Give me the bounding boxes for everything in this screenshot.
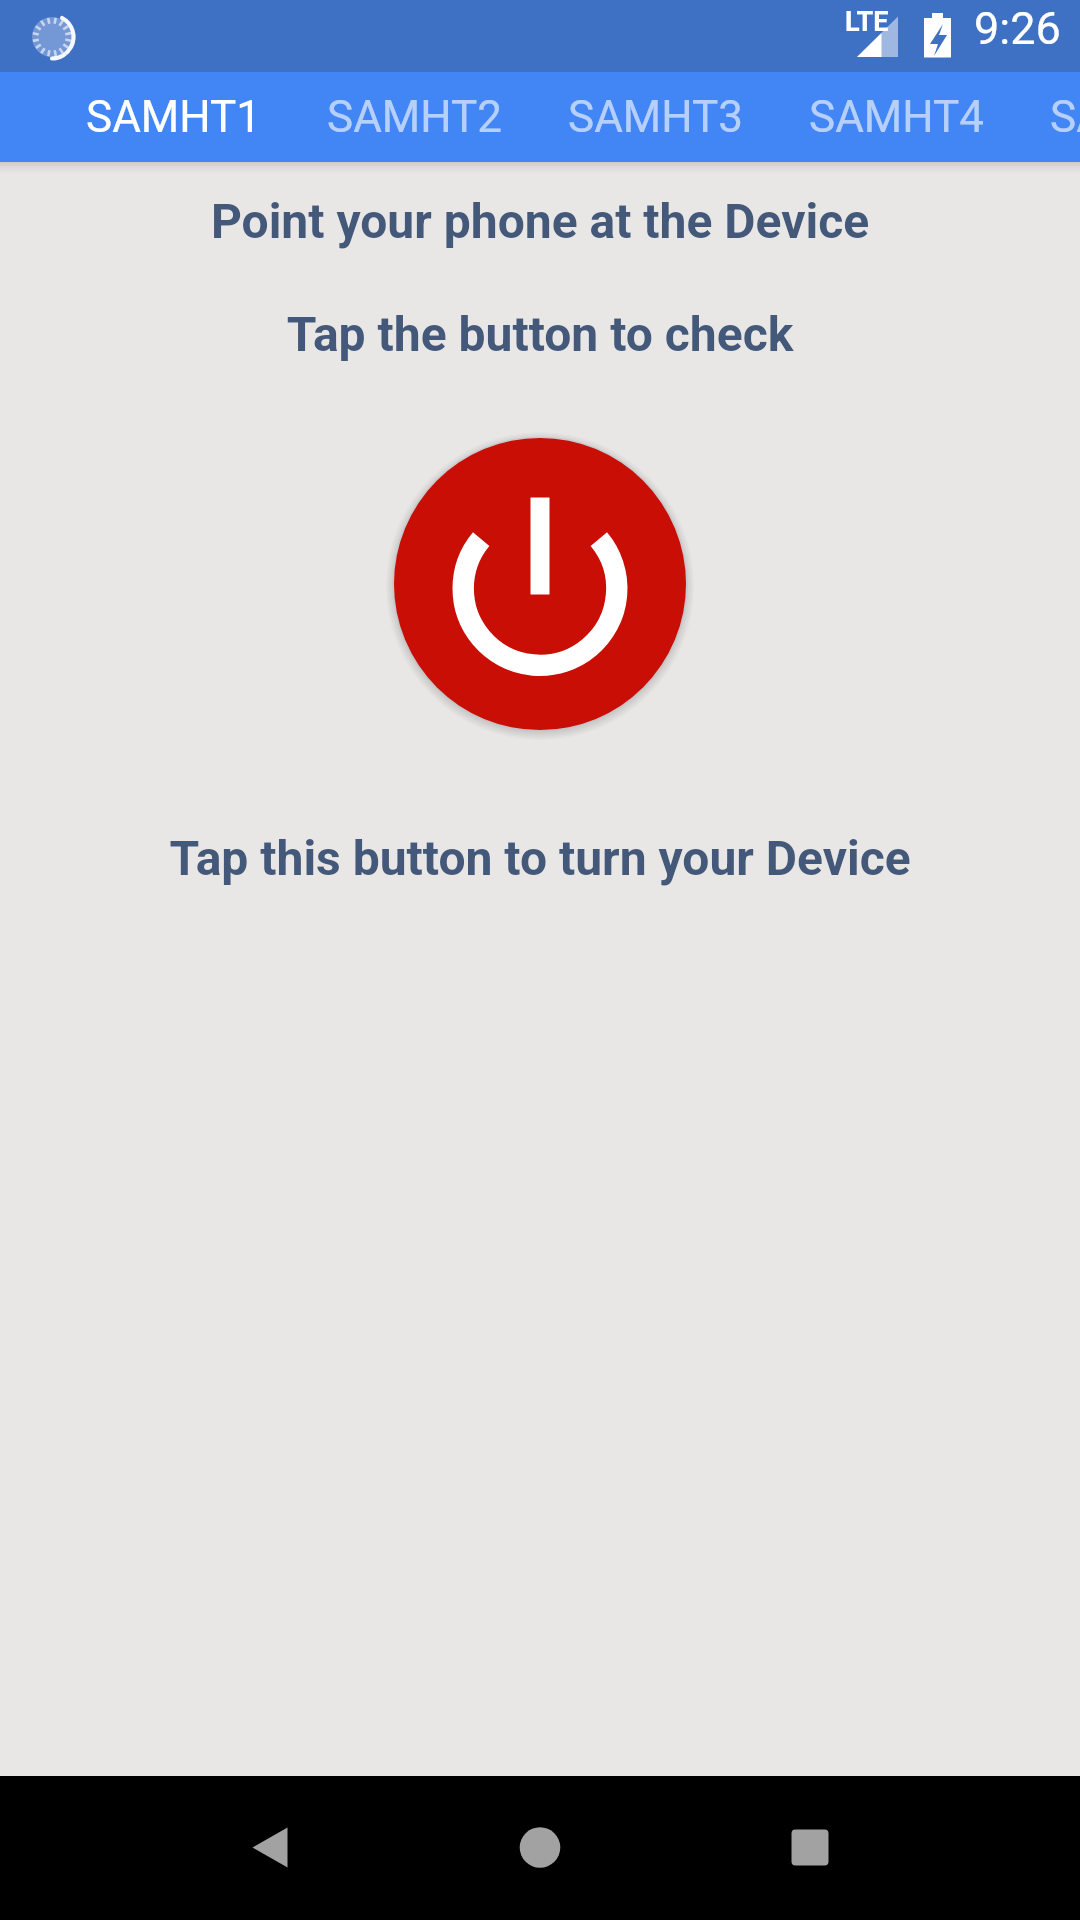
button[interactable]: SAMHT4 [809,72,1050,162]
button[interactable]: Back [198,1776,342,1920]
staticText: 9:26 [974,2,1061,55]
staticText: SAMHT5 [1050,91,1080,143]
staticText: Tap the button to check [0,306,1080,362]
staticText: Tap this button to turn your Device [0,830,1080,886]
staticText: LTE [845,6,889,38]
staticText: SAMHT2 [327,91,502,143]
button[interactable]: SAMHT3 [568,72,809,162]
staticText: SAMHT3 [568,91,743,143]
button[interactable]: SAMHT1 [86,72,327,162]
staticText: SAMHT4 [809,91,984,143]
button[interactable]: Power [394,438,686,730]
button[interactable]: Home [468,1776,612,1920]
button[interactable]: SAMHT2 [327,72,568,162]
staticText: Point your phone at the Device [0,193,1080,249]
button[interactable]: Recents [738,1776,882,1920]
staticText: SAMHT1 [86,91,261,143]
button[interactable]: SAMHT5 [1050,72,1080,162]
